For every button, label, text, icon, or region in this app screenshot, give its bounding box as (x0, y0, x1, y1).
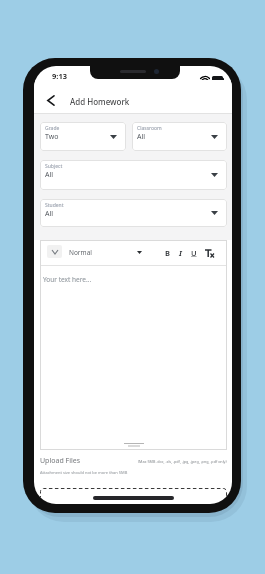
staticText: 9:13 (52, 71, 67, 81)
staticText: Student (45, 202, 64, 209)
button[interactable] (43, 93, 57, 107)
staticText: Classroom (137, 125, 162, 132)
button[interactable] (205, 249, 214, 258)
button[interactable]: U (191, 248, 197, 258)
staticText: Upload Files (40, 456, 81, 466)
button[interactable]: Normal (69, 248, 92, 257)
button[interactable] (40, 488, 227, 504)
button[interactable]: Student (40, 199, 227, 227)
staticText: All (45, 170, 54, 180)
button[interactable]: B (165, 248, 170, 258)
button[interactable]: I (179, 248, 182, 258)
staticText: All (45, 209, 54, 219)
staticText: Add Homework (70, 96, 130, 107)
staticText: (Max 5MB .doc, .xls, .pdf, .jpg, .jpeg, … (138, 459, 227, 464)
staticText: Grade (45, 125, 60, 132)
button[interactable]: Grade (40, 122, 126, 151)
button[interactable]: Subject (40, 160, 227, 190)
button[interactable]: Classroom (132, 122, 227, 151)
staticText: Your text here... (43, 275, 92, 284)
staticText: Subject (45, 163, 63, 170)
staticText: Two (45, 132, 59, 142)
button[interactable] (47, 245, 62, 258)
staticText: Attachment size should not be more than … (40, 470, 128, 475)
staticText: All (137, 132, 146, 142)
